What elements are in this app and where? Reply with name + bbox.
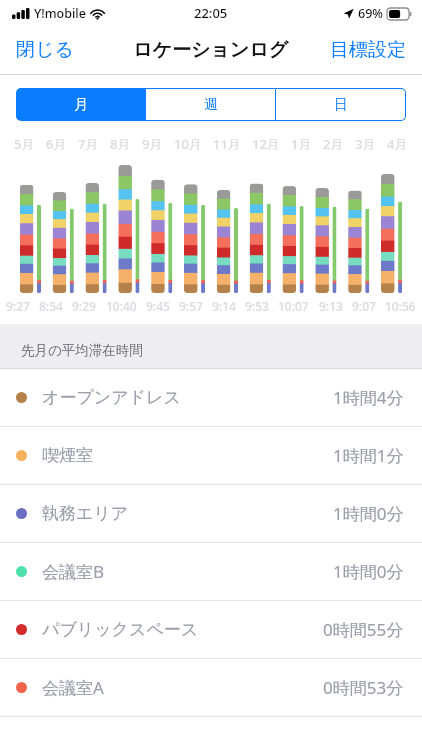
staticText: 5月 <box>14 135 35 153</box>
staticText: 2月 <box>323 135 344 153</box>
staticText: 週 <box>204 96 218 114</box>
staticText: 9:27 <box>6 298 30 314</box>
button[interactable]: 執務エリア <box>0 485 422 542</box>
staticText: 4月 <box>387 135 408 153</box>
staticText: 8:54 <box>39 298 63 314</box>
staticText: 喫煙室 <box>42 445 93 466</box>
staticText: 9:13 <box>319 298 343 314</box>
staticText: 0時間53分 <box>323 676 404 699</box>
staticText: 日 <box>334 96 348 114</box>
button[interactable]: 目標設定 <box>314 30 422 70</box>
staticText: 閉じる <box>16 38 74 62</box>
button[interactable]: パブリックスペース <box>0 601 422 658</box>
staticText: 9:14 <box>212 298 236 314</box>
staticText: 執務エリア <box>42 503 129 524</box>
staticText: 8月 <box>110 135 131 153</box>
staticText: 先月の平均滞在時間 <box>21 342 143 359</box>
staticText: 3月 <box>355 135 376 153</box>
staticText: 9月 <box>142 135 163 153</box>
staticText: 1時間0分 <box>333 502 404 525</box>
staticText: 1時間4分 <box>333 386 404 409</box>
staticText: 6月 <box>46 135 67 153</box>
staticText: Y!mobile <box>34 5 86 22</box>
staticText: 0時間55分 <box>323 618 404 641</box>
staticText: 69% <box>358 5 383 22</box>
button[interactable]: オープンアドレス <box>0 369 422 426</box>
staticText: 目標設定 <box>330 38 406 62</box>
staticText: 会議室B <box>42 560 105 583</box>
button[interactable]: 月 <box>17 89 145 120</box>
staticText: 1月 <box>291 135 312 153</box>
staticText: 9:53 <box>245 298 269 314</box>
staticText: 10:07 <box>278 298 309 314</box>
staticText: 7月 <box>78 135 99 153</box>
button[interactable]: 会議室A <box>0 659 422 716</box>
button[interactable]: 週 <box>146 89 275 120</box>
staticText: 9:45 <box>146 298 170 314</box>
staticText: 1時間0分 <box>333 560 404 583</box>
staticText: 9:07 <box>352 298 376 314</box>
staticText: 1時間1分 <box>333 444 404 467</box>
staticText: 10月 <box>174 135 202 153</box>
staticText: 月 <box>74 96 88 114</box>
button[interactable]: 日 <box>276 89 405 120</box>
staticText: 10:40 <box>106 298 137 314</box>
staticText: 22:05 <box>194 4 228 22</box>
staticText: 11月 <box>213 135 241 153</box>
staticText: オープンアドレス <box>42 387 181 408</box>
staticText: 9:29 <box>72 298 96 314</box>
staticText: 12月 <box>252 135 280 153</box>
staticText: 会議室A <box>42 676 104 699</box>
staticText: パブリックスペース <box>42 619 199 640</box>
button[interactable]: 閉じる <box>0 30 90 70</box>
button[interactable]: 会議室B <box>0 543 422 600</box>
button[interactable]: 喫煙室 <box>0 427 422 484</box>
staticText: ロケーションログ <box>133 38 289 62</box>
staticText: 10:56 <box>385 298 416 314</box>
staticText: 9:57 <box>179 298 203 314</box>
